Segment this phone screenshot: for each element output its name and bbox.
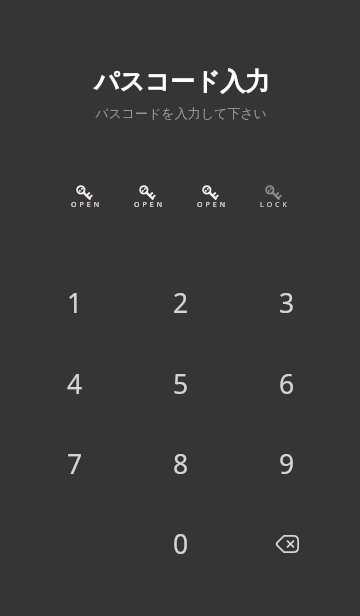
staticText: OPEN xyxy=(134,200,165,210)
button[interactable]: Delete xyxy=(251,508,323,580)
staticText: 9 xyxy=(279,446,295,482)
staticText: パスコードを入力して下さい xyxy=(95,105,267,121)
button[interactable]: 9 xyxy=(251,428,323,500)
staticText: パスコード入力 xyxy=(94,66,270,97)
button[interactable]: 6 xyxy=(251,348,323,420)
staticText: 6 xyxy=(279,366,295,402)
button[interactable]: Open passcode slot xyxy=(62,185,110,210)
button[interactable]: 7 xyxy=(39,428,111,500)
button[interactable]: 8 xyxy=(145,428,217,500)
button[interactable]: Open passcode slot xyxy=(125,185,173,210)
button[interactable]: Open passcode slot xyxy=(188,185,236,210)
staticText: 4 xyxy=(67,366,83,402)
button[interactable]: 4 xyxy=(39,348,111,420)
button[interactable]: 5 xyxy=(145,348,217,420)
staticText: OPEN xyxy=(71,200,102,210)
staticText: OPEN xyxy=(197,200,228,210)
button[interactable]: Locked passcode slot xyxy=(251,185,299,210)
staticText: 5 xyxy=(173,366,189,402)
staticText: LOCK xyxy=(260,200,290,210)
staticText: 0 xyxy=(173,526,189,562)
button[interactable]: 1 xyxy=(39,267,111,339)
staticText: 1 xyxy=(67,285,83,321)
staticText: 8 xyxy=(173,446,189,482)
staticText: 3 xyxy=(279,285,295,321)
staticText: 7 xyxy=(67,446,83,482)
button[interactable]: 2 xyxy=(145,267,217,339)
staticText: 2 xyxy=(173,285,189,321)
button[interactable]: 3 xyxy=(251,267,323,339)
button[interactable]: 0 xyxy=(145,508,217,580)
